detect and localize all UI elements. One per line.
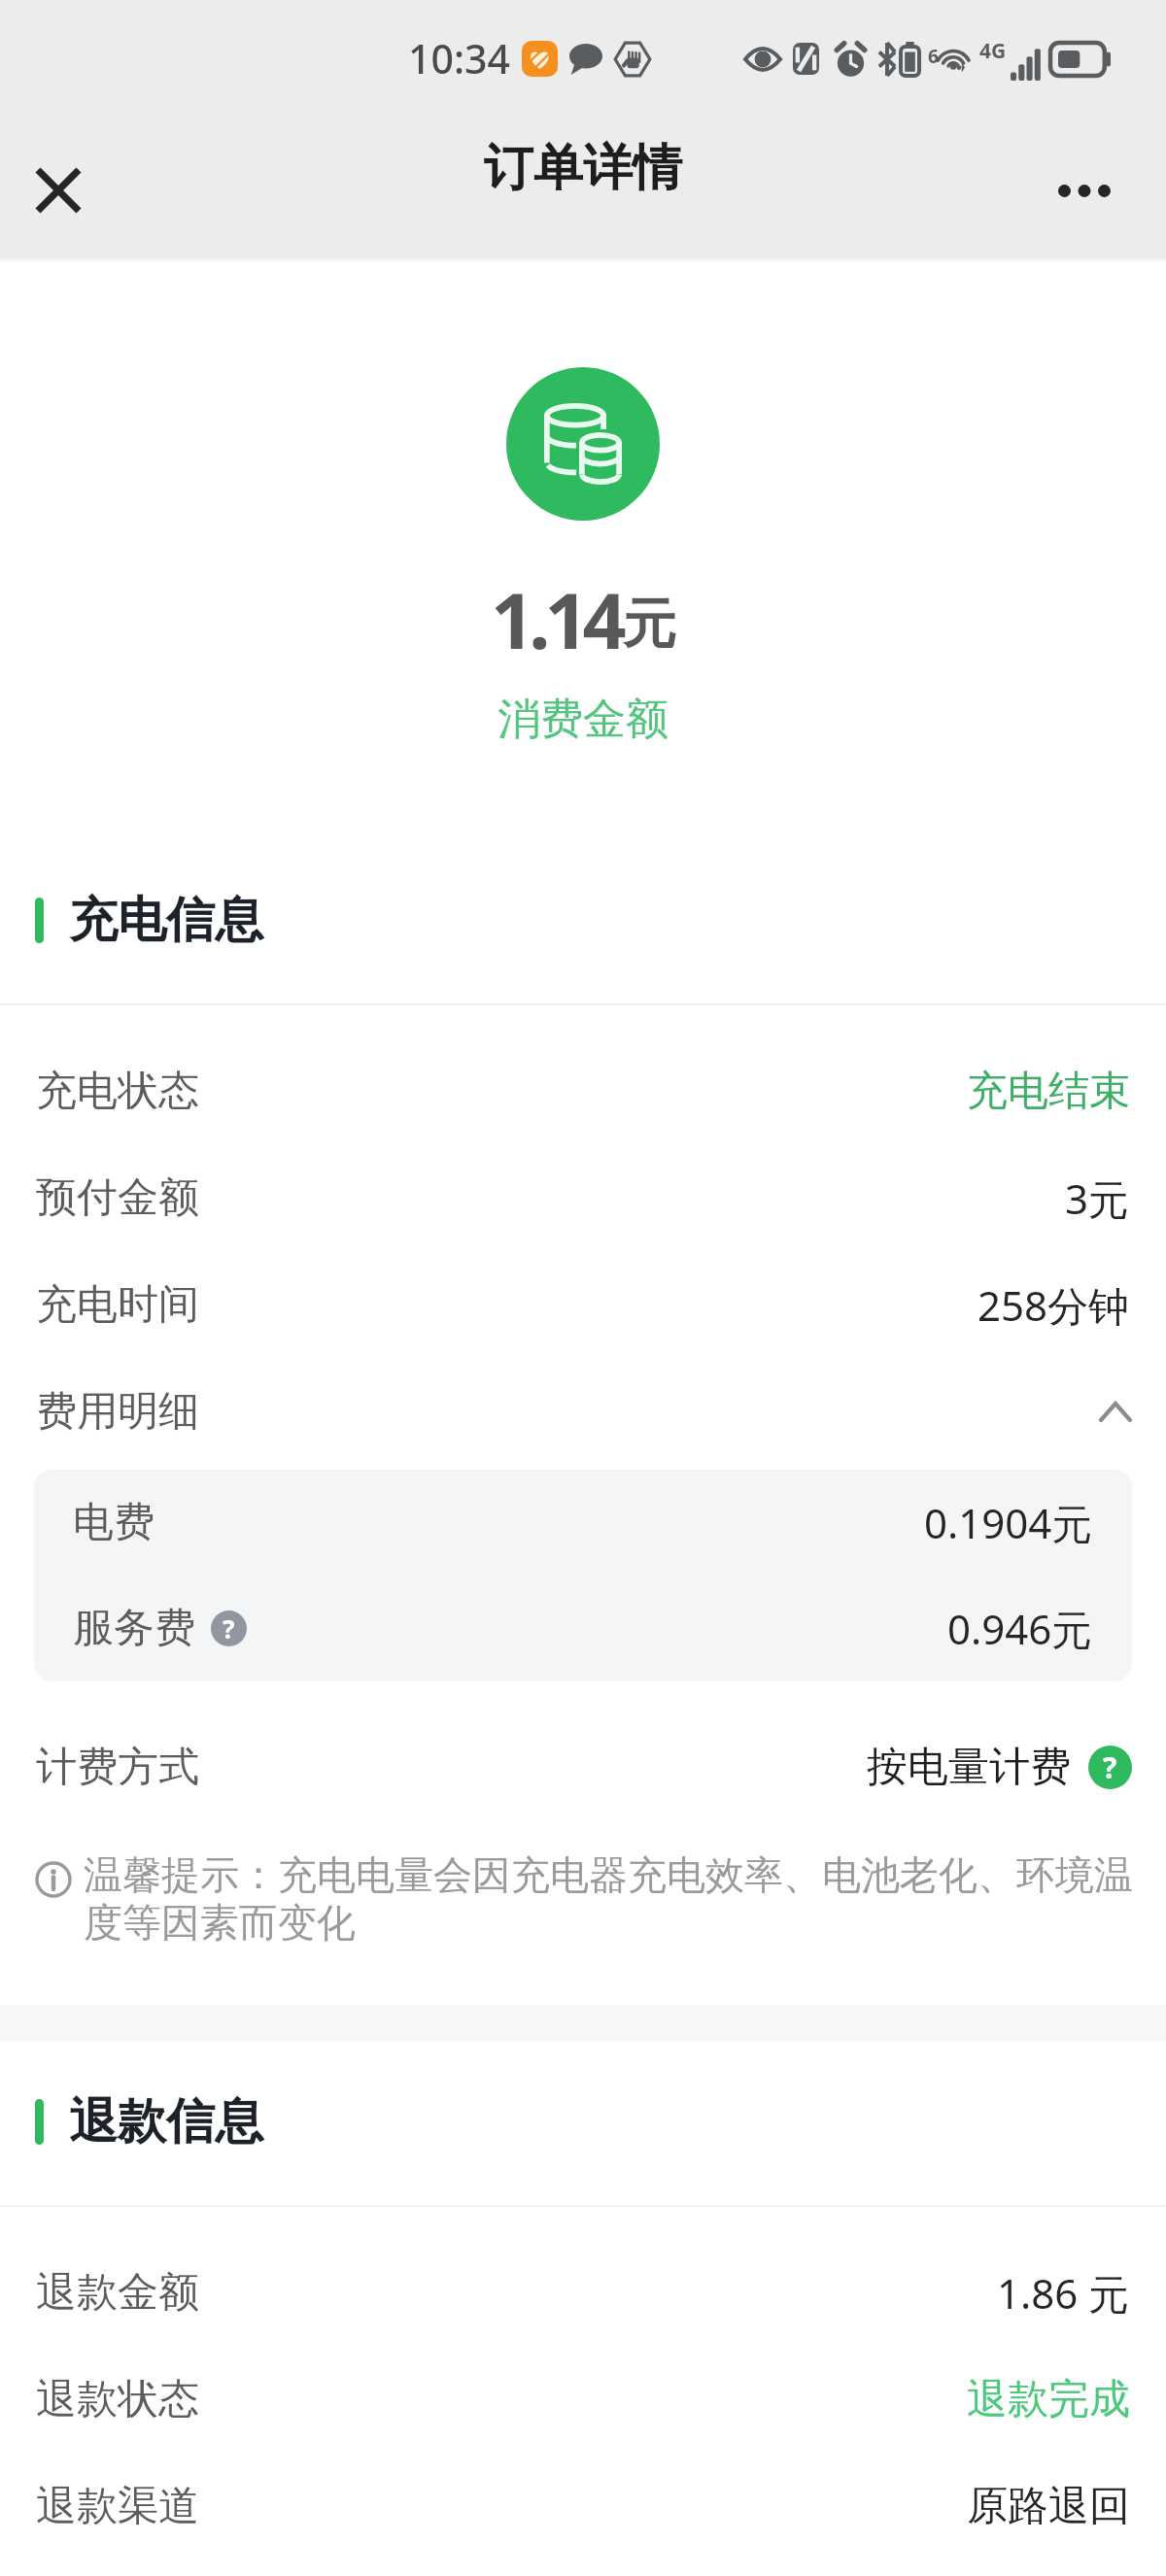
button[interactable]: Toggle fee detail <box>0 1358 1166 1465</box>
staticText: 1.86 元 <box>997 2265 1130 2321</box>
staticText: 订单详情 <box>484 137 682 199</box>
staticText: 服务费 <box>73 1603 195 1654</box>
staticText: 消费金额 <box>497 693 669 746</box>
staticText: 充电信息 <box>69 890 263 951</box>
staticText: 退款完成 <box>967 2374 1130 2425</box>
button[interactable]: 电费 <box>34 1470 1132 1575</box>
button[interactable]: 服务费 <box>34 1575 1132 1681</box>
button[interactable]: 预付金额 <box>0 1144 1166 1251</box>
staticText: 电费 <box>73 1497 154 1548</box>
staticText: 3元 <box>1065 1170 1130 1226</box>
staticText: 6 <box>928 44 939 69</box>
staticText: 充电状态 <box>36 1066 199 1117</box>
button[interactable]: Billing method info <box>1088 1746 1132 1789</box>
button[interactable]: 退款金额 <box>0 2239 1166 2346</box>
staticText: 元 <box>623 591 676 658</box>
staticText: 退款渠道 <box>36 2481 199 2532</box>
button[interactable]: 计费方式 <box>0 1715 1166 1818</box>
button[interactable]: Service fee info <box>211 1610 247 1646</box>
button[interactable]: 退款渠道 <box>0 2453 1166 2559</box>
staticText: 退款金额 <box>36 2267 199 2319</box>
button[interactable]: 充电时间 <box>0 1251 1166 1358</box>
staticText: 原路退回 <box>967 2481 1130 2532</box>
button[interactable]: 退款状态 <box>0 2346 1166 2453</box>
staticText: 费用明细 <box>36 1386 199 1438</box>
staticText: 4G <box>979 37 1007 65</box>
staticText: 退款信息 <box>69 2091 263 2152</box>
staticText: 按电量计费 <box>867 1742 1071 1793</box>
staticText: 预付金额 <box>36 1172 199 1224</box>
staticText: 温馨提示：充电电量会因充电器充电效率、电池老化、环境温度等因素而变化 <box>84 1850 1139 1947</box>
button[interactable]: 充电状态 <box>0 1037 1166 1144</box>
staticText: 0.946元 <box>947 1601 1093 1656</box>
staticText: 计费方式 <box>36 1742 199 1793</box>
button[interactable]: Close <box>10 161 107 220</box>
staticText: 0.1904元 <box>924 1495 1093 1550</box>
staticText: 充电结束 <box>967 1066 1130 1117</box>
staticText: ? <box>1103 1747 1117 1787</box>
staticText: 退款状态 <box>36 2374 199 2425</box>
staticText: ? <box>223 1611 235 1645</box>
staticText: 10:34 <box>408 31 510 85</box>
staticText: 充电时间 <box>36 1279 199 1331</box>
staticText: 1.14 <box>491 567 621 672</box>
button[interactable]: More options <box>1043 178 1126 203</box>
staticText: 258分钟 <box>977 1277 1130 1333</box>
